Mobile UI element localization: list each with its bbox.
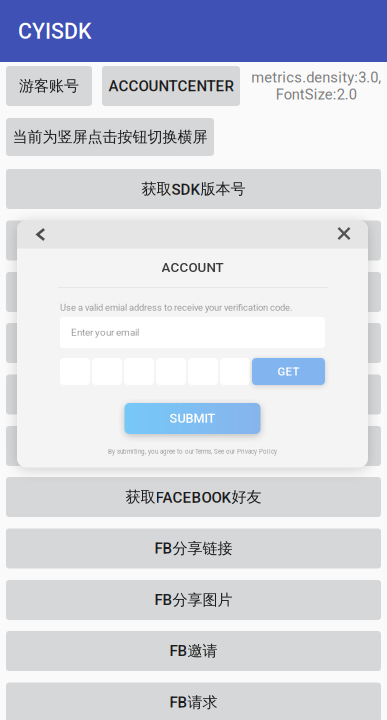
button[interactable]: GET bbox=[252, 358, 325, 385]
button[interactable]: 登录FACEBOOK bbox=[6, 220, 381, 260]
staticText: ACCOUNT bbox=[161, 260, 223, 275]
staticText: 登录FACEBOOK bbox=[140, 231, 246, 250]
staticText: Use a valid emial address to receive you… bbox=[60, 302, 292, 313]
staticText: FB请求 bbox=[169, 693, 217, 712]
staticText: FB分享链接 bbox=[154, 539, 232, 558]
button[interactable]: 获取GOOGLE账号 bbox=[6, 323, 381, 363]
staticText: CYISDK bbox=[18, 19, 91, 44]
staticText: By submiting, you agree to our Terms, Se… bbox=[108, 448, 277, 455]
button[interactable]: 获取SDK版本号 bbox=[6, 169, 381, 209]
button[interactable]: 游客账号 bbox=[6, 66, 92, 106]
button[interactable]: Close bbox=[324, 219, 364, 247]
staticText: 获取GOOGLE账号 bbox=[135, 333, 252, 352]
button[interactable]: FB请求 bbox=[6, 682, 381, 720]
staticText: GET bbox=[277, 365, 299, 378]
staticText: metrics.density:3.0, FontSize:2.0 bbox=[251, 69, 381, 103]
button[interactable]: 获取FACEBOOK好友 bbox=[6, 477, 381, 517]
staticText: ACCOUNTCENTER bbox=[108, 77, 233, 95]
button[interactable]: 获取用户信息 bbox=[6, 426, 381, 466]
button[interactable]: FACEBOOK登出 bbox=[6, 272, 381, 312]
staticText: SUBMIT bbox=[169, 411, 215, 426]
staticText: GOOGLE登出 bbox=[150, 385, 237, 404]
button[interactable]: Back bbox=[21, 220, 61, 248]
button[interactable]: FB分享图片 bbox=[6, 580, 381, 620]
staticText: FB分享图片 bbox=[154, 590, 232, 609]
staticText: Enter your email bbox=[71, 327, 139, 338]
staticText: 当前为竖屏点击按钮切换横屏 bbox=[12, 127, 207, 146]
button[interactable]: FB邀请 bbox=[6, 631, 381, 671]
button[interactable]: 当前为竖屏点击按钮切换横屏 bbox=[6, 118, 214, 156]
staticText: FB邀请 bbox=[169, 641, 217, 660]
button[interactable]: SUBMIT bbox=[124, 403, 260, 434]
staticText: 获取SDK版本号 bbox=[141, 179, 245, 198]
staticText: 获取FACEBOOK好友 bbox=[125, 487, 261, 506]
staticText: 获取用户信息 bbox=[148, 436, 238, 455]
button[interactable]: FB分享链接 bbox=[6, 528, 381, 568]
button[interactable]: ACCOUNTCENTER bbox=[102, 66, 240, 106]
staticText: 游客账号 bbox=[19, 76, 79, 95]
button[interactable]: GOOGLE登出 bbox=[6, 374, 381, 414]
staticText: FACEBOOK登出 bbox=[140, 282, 246, 301]
